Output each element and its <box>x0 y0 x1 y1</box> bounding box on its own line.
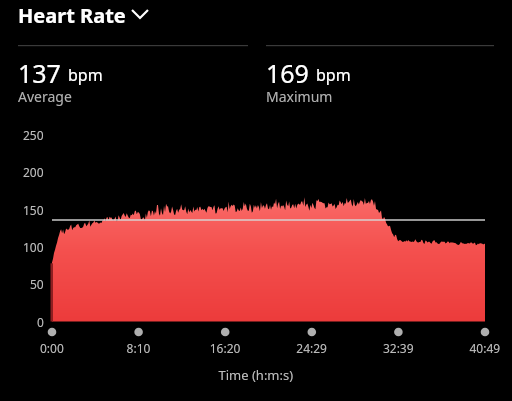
other: Heart Rate workout chart <box>0 0 512 401</box>
button[interactable]: Heart Rate, collapse <box>0 0 512 401</box>
